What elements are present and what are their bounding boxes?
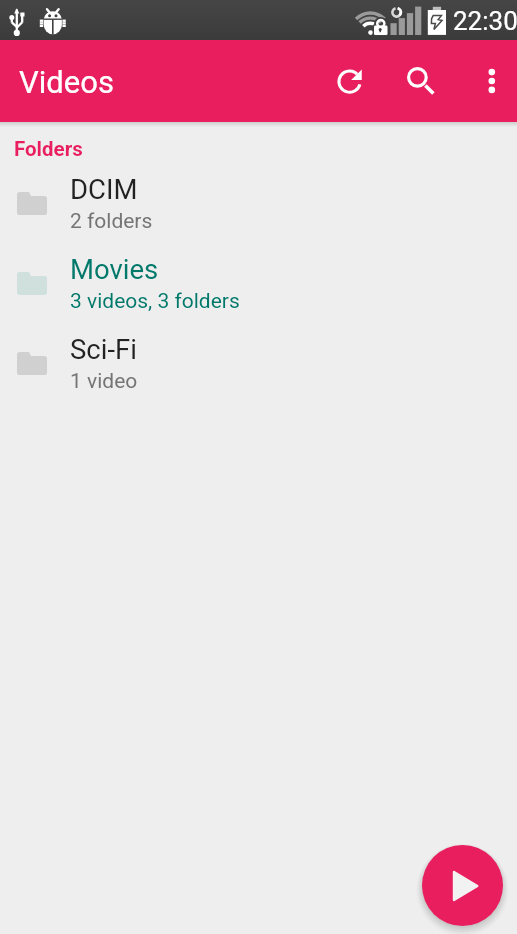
staticText: 1 video: [70, 369, 138, 394]
staticText: 3 videos, 3 folders: [70, 289, 240, 314]
staticText: Videos: [19, 64, 114, 100]
button[interactable]: Movies: [0, 243, 517, 323]
button[interactable]: Refresh: [314, 40, 386, 122]
button[interactable]: Search: [386, 40, 448, 122]
staticText: 2 folders: [70, 209, 153, 234]
staticText: Folders: [14, 137, 83, 161]
button[interactable]: Play: [422, 845, 503, 926]
button[interactable]: More options: [469, 40, 517, 122]
staticText: Movies: [70, 253, 159, 285]
staticText: 22:30: [453, 6, 517, 36]
staticText: DCIM: [70, 173, 138, 205]
button[interactable]: DCIM: [0, 163, 517, 243]
button[interactable]: Sci-Fi: [0, 323, 517, 403]
staticText: Sci-Fi: [70, 333, 137, 365]
